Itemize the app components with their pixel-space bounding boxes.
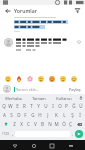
button[interactable]: Virgül — [10, 129, 15, 138]
button[interactable]: Ğ — [70, 102, 77, 110]
button[interactable]: B — [39, 120, 46, 128]
staticText: Paylaş — [69, 87, 81, 92]
button[interactable]: W — [7, 102, 14, 110]
button[interactable]: Klavyeyi gizle — [66, 141, 75, 150]
button[interactable]: U — [42, 102, 49, 110]
button[interactable]: H — [36, 111, 44, 119]
staticText: E — [16, 103, 19, 109]
button[interactable]: Ç — [67, 120, 74, 128]
button[interactable]: Emoji — [69, 74, 79, 84]
button[interactable]: Emoji — [3, 74, 13, 84]
button[interactable]: Ş — [68, 111, 76, 119]
staticText: H — [38, 112, 42, 118]
staticText: K — [55, 112, 58, 118]
button[interactable]: Son uygulamalar — [47, 141, 56, 150]
button[interactable]: Emoji — [36, 74, 46, 84]
button[interactable]: Ü — [77, 102, 84, 110]
button[interactable]: Ana ekran — [29, 141, 38, 150]
staticText: J — [47, 112, 49, 118]
button[interactable]: I — [49, 102, 56, 110]
button[interactable]: Y — [35, 102, 42, 110]
staticText: O — [58, 103, 62, 109]
button[interactable]: Sesle yaz — [76, 94, 85, 102]
staticText: B — [41, 121, 44, 127]
staticText: U — [44, 103, 48, 109]
staticText: Z — [13, 121, 16, 127]
button[interactable]: Emoji — [25, 74, 35, 84]
staticText: A — [3, 112, 6, 118]
staticText: Ş — [71, 112, 74, 118]
button[interactable]: Ö — [60, 120, 67, 128]
button[interactable]: Sil — [74, 120, 84, 128]
button[interactable]: Merhaba — [0, 94, 26, 102]
button[interactable]: Emoji — [47, 74, 57, 84]
staticText: Y — [37, 103, 40, 109]
button[interactable]: Filtrele — [73, 6, 82, 15]
button[interactable]: N — [46, 120, 53, 128]
staticText: P — [65, 103, 68, 109]
staticText: G — [31, 112, 35, 118]
button[interactable]: L — [60, 111, 68, 119]
staticText: , — [12, 131, 14, 137]
button[interactable]: Yorum ekle… — [14, 87, 66, 92]
button[interactable]: Büyük harf — [1, 120, 11, 128]
button[interactable]: F — [22, 111, 29, 119]
button[interactable]: A — [1, 111, 8, 119]
staticText: Ç — [69, 121, 72, 127]
staticText: İ — [79, 112, 81, 118]
button[interactable]: Gönder — [75, 130, 83, 138]
button[interactable]: R — [21, 102, 28, 110]
button[interactable]: O — [56, 102, 63, 110]
button[interactable]: Beğen — [0, 36, 85, 51]
button[interactable]: E — [14, 102, 21, 110]
staticText: R — [23, 103, 26, 109]
staticText: Ö — [62, 121, 66, 127]
button[interactable]: ?123 — [1, 129, 10, 138]
staticText: . — [72, 131, 74, 137]
button[interactable]: S — [8, 111, 15, 119]
button[interactable]: T — [28, 102, 35, 110]
button[interactable]: Beğen — [75, 38, 82, 45]
button[interactable]: Paylaş — [68, 86, 82, 93]
button[interactable]: M — [53, 120, 60, 128]
button[interactable]: Q — [1, 102, 7, 110]
staticText: Q — [2, 103, 6, 109]
button[interactable]: Z — [11, 120, 18, 128]
staticText: Yorum ekle… — [16, 87, 40, 92]
staticText: V — [34, 121, 37, 127]
staticText: C — [27, 121, 30, 127]
button[interactable]: Emoji — [58, 74, 68, 84]
button[interactable]: Kullanıcı — [51, 94, 76, 102]
button[interactable]: Nokta — [70, 129, 75, 138]
button[interactable]: İ — [76, 111, 84, 119]
staticText: Kullanıcı — [56, 96, 72, 101]
staticText: Merhaba — [5, 96, 22, 101]
staticText: Ü — [79, 103, 83, 109]
button[interactable]: Geri — [10, 141, 19, 150]
button[interactable]: X — [18, 120, 25, 128]
staticText: Ğ — [72, 103, 76, 109]
button[interactable]: P — [63, 102, 70, 110]
button[interactable]: Geri — [3, 6, 12, 15]
staticText: D — [17, 112, 21, 118]
button[interactable]: Tamam — [26, 94, 51, 102]
staticText: S — [10, 112, 13, 118]
staticText: N — [48, 121, 52, 127]
button[interactable]: Emoji — [14, 74, 24, 84]
button[interactable]: D — [15, 111, 22, 119]
button[interactable]: V — [32, 120, 39, 128]
button[interactable]: C — [25, 120, 32, 128]
staticText: W — [8, 103, 13, 109]
staticText: ?123 — [2, 132, 9, 136]
staticText: L — [63, 112, 66, 118]
button[interactable]: K — [52, 111, 60, 119]
button[interactable]: G — [29, 111, 36, 119]
button[interactable]: J — [44, 111, 52, 119]
staticText: M — [54, 121, 59, 127]
staticText: Tamam — [32, 96, 46, 101]
staticText: X — [20, 121, 23, 127]
staticText: F — [24, 112, 27, 118]
staticText: T — [30, 103, 33, 109]
staticText: Yorumlar — [14, 7, 37, 14]
